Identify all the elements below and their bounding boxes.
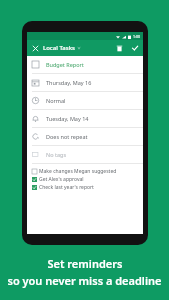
- button[interactable]: Delete: [111, 40, 127, 56]
- staticText: Check last year's report: [39, 184, 94, 191]
- button[interactable]: Save: [127, 40, 143, 56]
- button[interactable]: Check last year's report: [27, 183, 143, 191]
- staticText: No tags: [46, 151, 67, 158]
- staticText: Set reminders: [47, 256, 123, 271]
- button[interactable]: Local Tasks: [43, 40, 111, 56]
- button[interactable]: Get Alex's approval: [27, 175, 143, 183]
- staticText: Budget Report: [46, 61, 84, 68]
- button[interactable]: Normal: [27, 92, 143, 109]
- staticText: Local Tasks: [43, 44, 75, 52]
- button[interactable]: Does not repeat: [27, 128, 143, 145]
- staticText: Normal: [46, 97, 66, 104]
- staticText: Does not repeat: [46, 133, 88, 140]
- button[interactable]: No tags: [27, 146, 143, 163]
- button[interactable]: Thursday, May 16: [27, 74, 143, 91]
- staticText: Get Alex's approval: [39, 176, 84, 183]
- staticText: Make changes Megan suggested: [39, 168, 117, 175]
- button[interactable]: Tuesday, May 14: [27, 110, 143, 127]
- staticText: 1:00: [133, 34, 140, 39]
- button[interactable]: Make changes Megan suggested: [27, 167, 143, 175]
- button[interactable]: Close: [27, 40, 43, 56]
- button[interactable]: Budget Report: [27, 56, 143, 73]
- staticText: Tuesday, May 14: [46, 115, 89, 122]
- staticText: Thursday, May 16: [46, 79, 92, 86]
- staticText: so you never miss a deadline: [7, 273, 162, 288]
